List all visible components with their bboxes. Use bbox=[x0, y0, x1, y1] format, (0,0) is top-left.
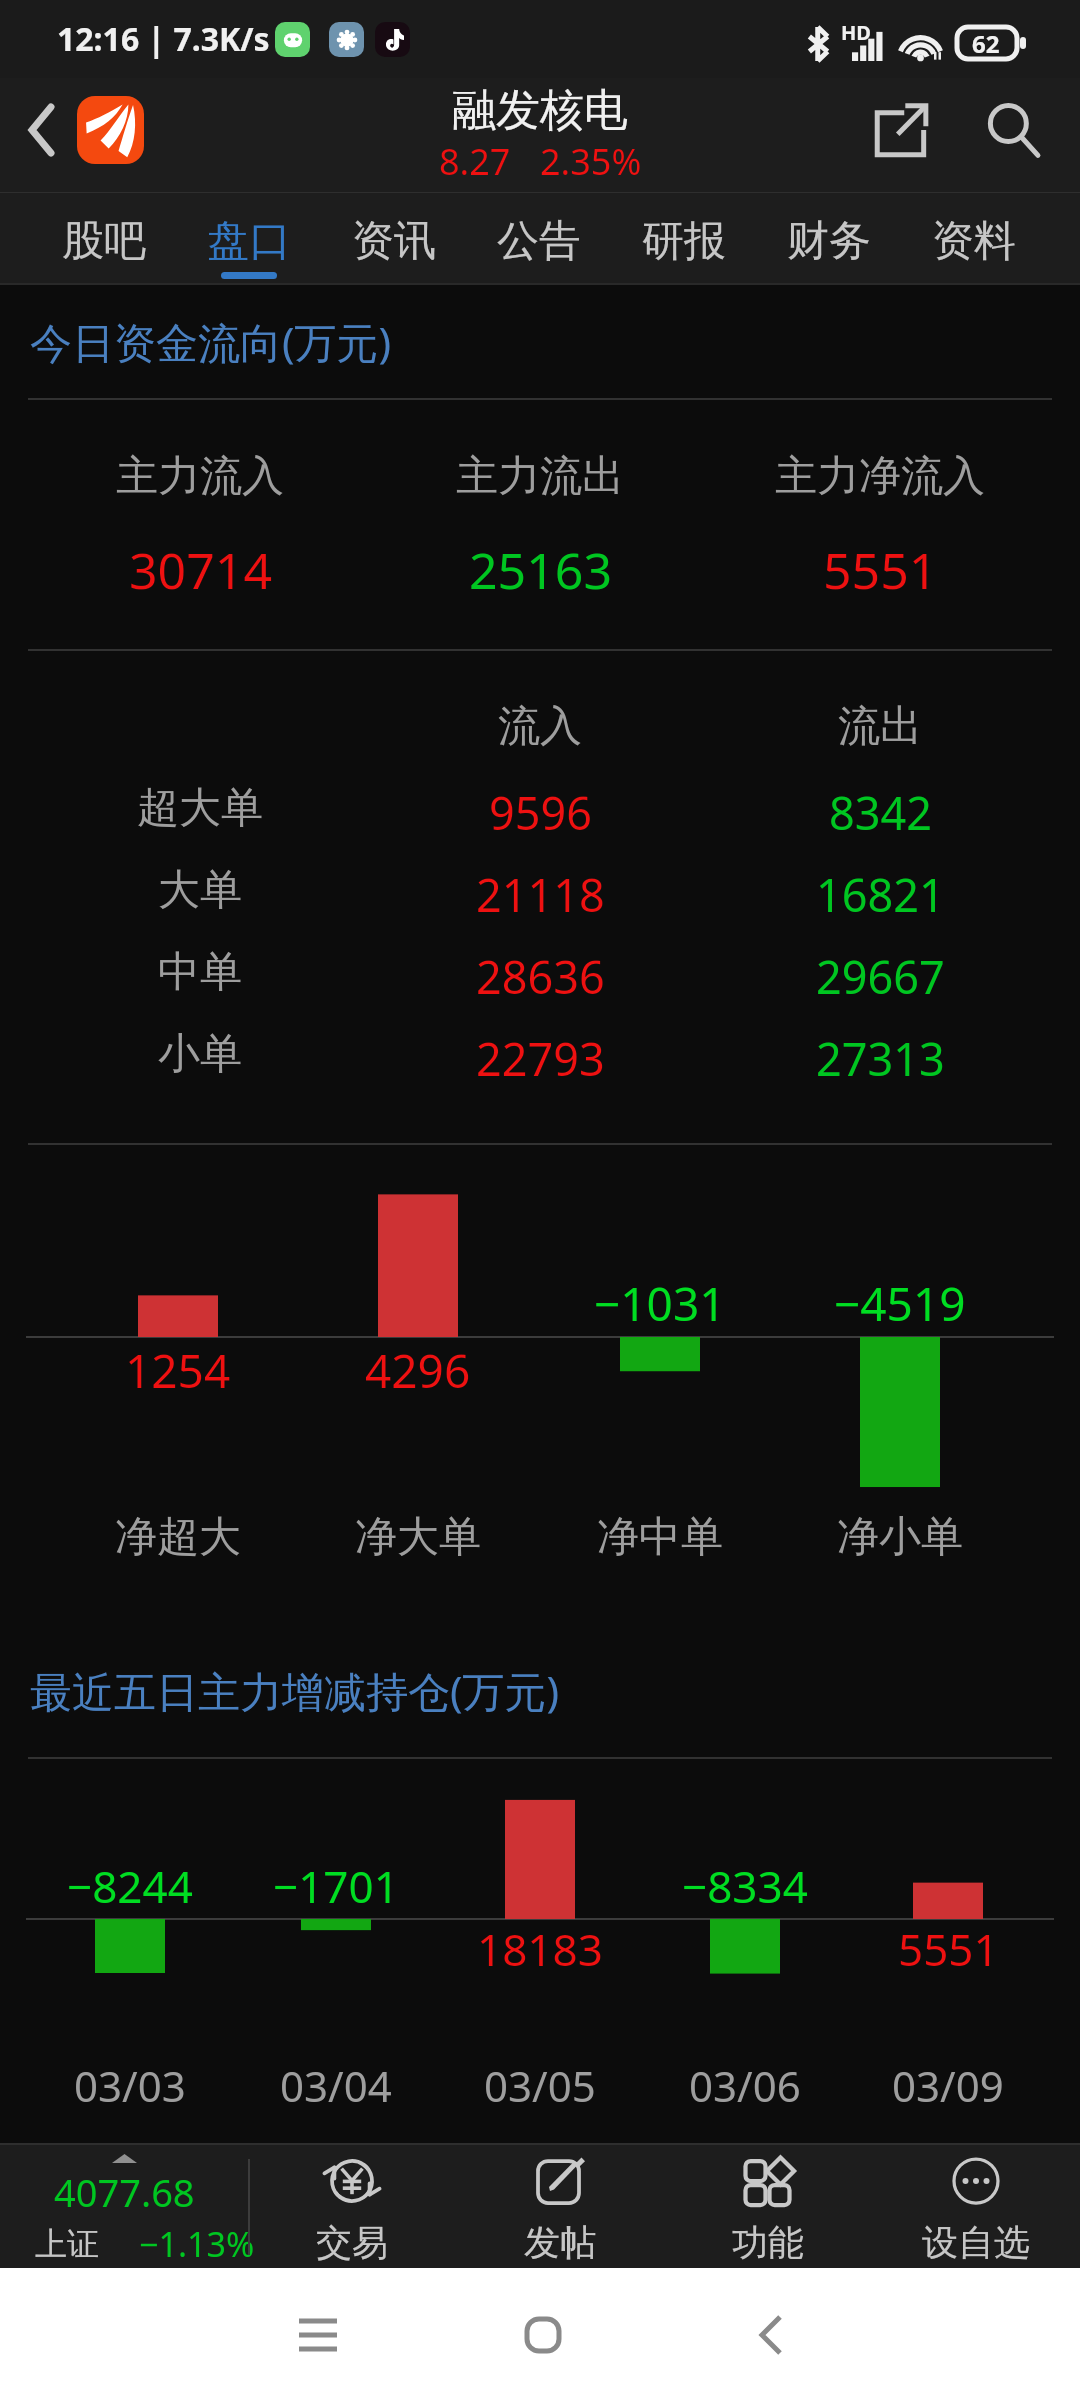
staticText: 8.27 bbox=[439, 137, 511, 186]
staticText: 净大单 bbox=[355, 1511, 481, 1564]
staticText: 净中单 bbox=[597, 1511, 723, 1564]
staticText: 交易 bbox=[316, 2220, 388, 2265]
staticText: 27313 bbox=[816, 1028, 945, 1089]
staticText: 29667 bbox=[816, 946, 945, 1007]
staticText: 资料 bbox=[932, 215, 1016, 268]
button[interactable]: 资讯 bbox=[321, 193, 466, 285]
button[interactable]: 发帖 bbox=[456, 2143, 664, 2268]
staticText: 03/03 bbox=[74, 2057, 186, 2114]
staticText: 4077.68 bbox=[54, 2166, 195, 2218]
staticText: 流出 bbox=[838, 700, 922, 753]
staticText: 主力流出 bbox=[456, 450, 624, 503]
button[interactable]: 公告 bbox=[466, 193, 611, 285]
staticText: 财务 bbox=[787, 215, 871, 268]
staticText: 30714 bbox=[129, 536, 272, 604]
staticText: 功能 bbox=[732, 2220, 804, 2265]
staticText: 25163 bbox=[469, 536, 612, 604]
staticText: −8334 bbox=[682, 1856, 808, 1916]
staticText: 主力净流入 bbox=[775, 450, 985, 503]
staticText: 资讯 bbox=[352, 215, 436, 268]
button[interactable]: 4077.68 bbox=[0, 2143, 248, 2268]
button[interactable]: Menu bbox=[278, 2295, 358, 2375]
staticText: 流入 bbox=[498, 700, 582, 753]
button[interactable]: Back bbox=[731, 2295, 811, 2375]
button[interactable]: 股吧 bbox=[31, 193, 176, 285]
staticText: −1701 bbox=[273, 1856, 399, 1916]
staticText: 最近五日主力增减持仓(万元) bbox=[30, 1662, 560, 1719]
button[interactable]: Back bbox=[3, 72, 79, 187]
button[interactable]: Share bbox=[853, 72, 949, 187]
staticText: −1031 bbox=[594, 1272, 726, 1335]
staticText: HD bbox=[841, 19, 871, 46]
staticText: 8342 bbox=[829, 782, 932, 843]
staticText: 今日资金流向(万元) bbox=[30, 313, 392, 370]
button[interactable]: Search bbox=[965, 73, 1061, 188]
staticText: 12:16 | 7.3K/s bbox=[57, 17, 270, 61]
button[interactable]: 资料 bbox=[901, 193, 1046, 285]
staticText: 发帖 bbox=[524, 2220, 596, 2265]
button[interactable]: 设自选 bbox=[872, 2143, 1080, 2268]
staticText: 18183 bbox=[477, 1919, 603, 1979]
button[interactable]: 交易 bbox=[248, 2143, 456, 2268]
button[interactable]: 功能 bbox=[664, 2143, 872, 2268]
staticText: 股吧 bbox=[62, 215, 146, 268]
staticText: 03/04 bbox=[280, 2057, 392, 2114]
staticText: 净超大 bbox=[115, 1511, 241, 1564]
staticText: 28636 bbox=[476, 946, 605, 1007]
staticText: 1254 bbox=[125, 1339, 231, 1402]
button[interactable]: 盘口 bbox=[176, 193, 321, 285]
staticText: 2.35% bbox=[540, 137, 642, 186]
staticText: 小单 bbox=[158, 1028, 242, 1081]
staticText: 设自选 bbox=[922, 2220, 1030, 2265]
staticText: 03/05 bbox=[484, 2057, 596, 2114]
staticText: 9596 bbox=[489, 782, 592, 843]
staticText: 21118 bbox=[476, 864, 605, 925]
staticText: 上证 bbox=[35, 2224, 99, 2264]
staticText: 公告 bbox=[497, 215, 581, 268]
staticText: 03/06 bbox=[689, 2057, 801, 2114]
staticText: 融发核电 bbox=[452, 83, 628, 138]
button[interactable]: Home bbox=[503, 2295, 583, 2375]
staticText: 净小单 bbox=[837, 1511, 963, 1564]
staticText: 大单 bbox=[158, 864, 242, 917]
staticText: 5551 bbox=[898, 1919, 999, 1979]
staticText: 4296 bbox=[365, 1339, 471, 1402]
staticText: 研报 bbox=[642, 215, 726, 268]
staticText: −4519 bbox=[834, 1272, 966, 1335]
staticText: 16821 bbox=[816, 864, 945, 925]
staticText: 主力流入 bbox=[116, 450, 284, 503]
staticText: −1.13% bbox=[139, 2221, 255, 2267]
staticText: −8244 bbox=[67, 1856, 193, 1916]
staticText: 中单 bbox=[158, 946, 242, 999]
staticText: 62 bbox=[972, 27, 1000, 60]
button[interactable]: 财务 bbox=[756, 193, 901, 285]
staticText: 5551 bbox=[823, 536, 938, 604]
staticText: 盘口 bbox=[207, 215, 291, 268]
staticText: 22793 bbox=[476, 1028, 605, 1089]
staticText: 03/09 bbox=[892, 2057, 1004, 2114]
button[interactable]: 研报 bbox=[611, 193, 756, 285]
staticText: 超大单 bbox=[137, 782, 263, 835]
button[interactable]: App home bbox=[77, 96, 144, 164]
